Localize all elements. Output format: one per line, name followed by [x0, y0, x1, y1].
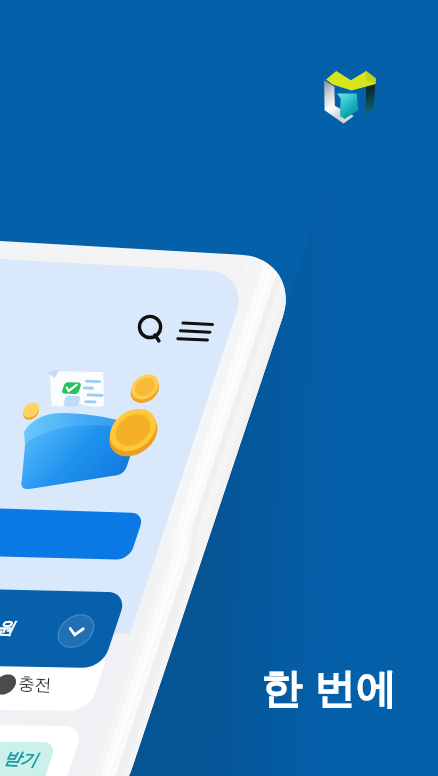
staticText: 한 번에 [261, 659, 398, 715]
staticText: 받기 [3, 748, 37, 771]
staticText: 5,000원 [0, 613, 14, 639]
staticText: 충전 [18, 673, 52, 696]
button[interactable]: App logo [320, 65, 380, 125]
